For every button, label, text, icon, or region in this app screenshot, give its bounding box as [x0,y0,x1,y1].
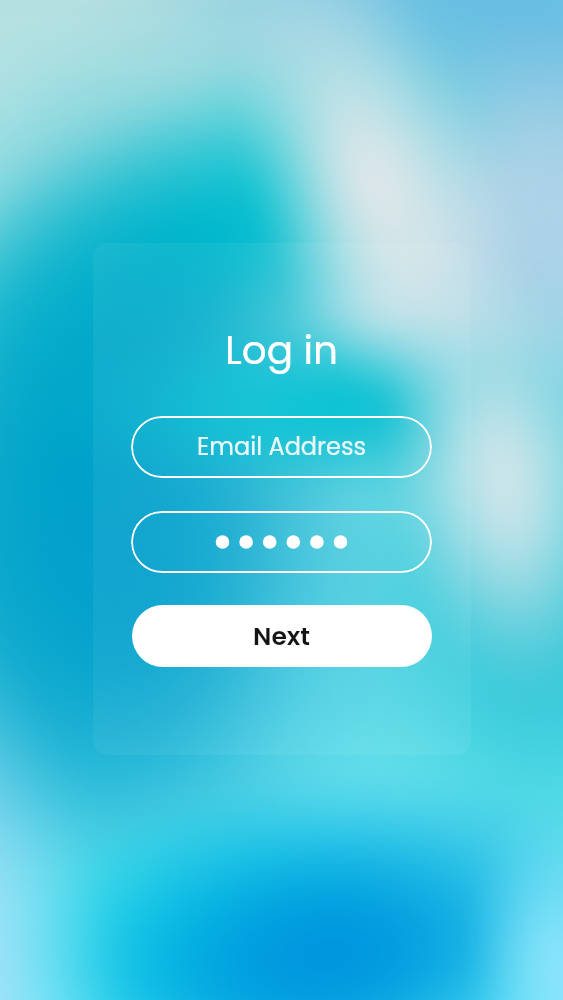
staticText: Next [253,619,311,654]
staticText: Log in [0,323,563,378]
button[interactable]: Email Address [131,416,432,478]
button[interactable]: Next [132,605,432,667]
staticText: Email Address [197,430,366,464]
button[interactable] [131,511,432,573]
